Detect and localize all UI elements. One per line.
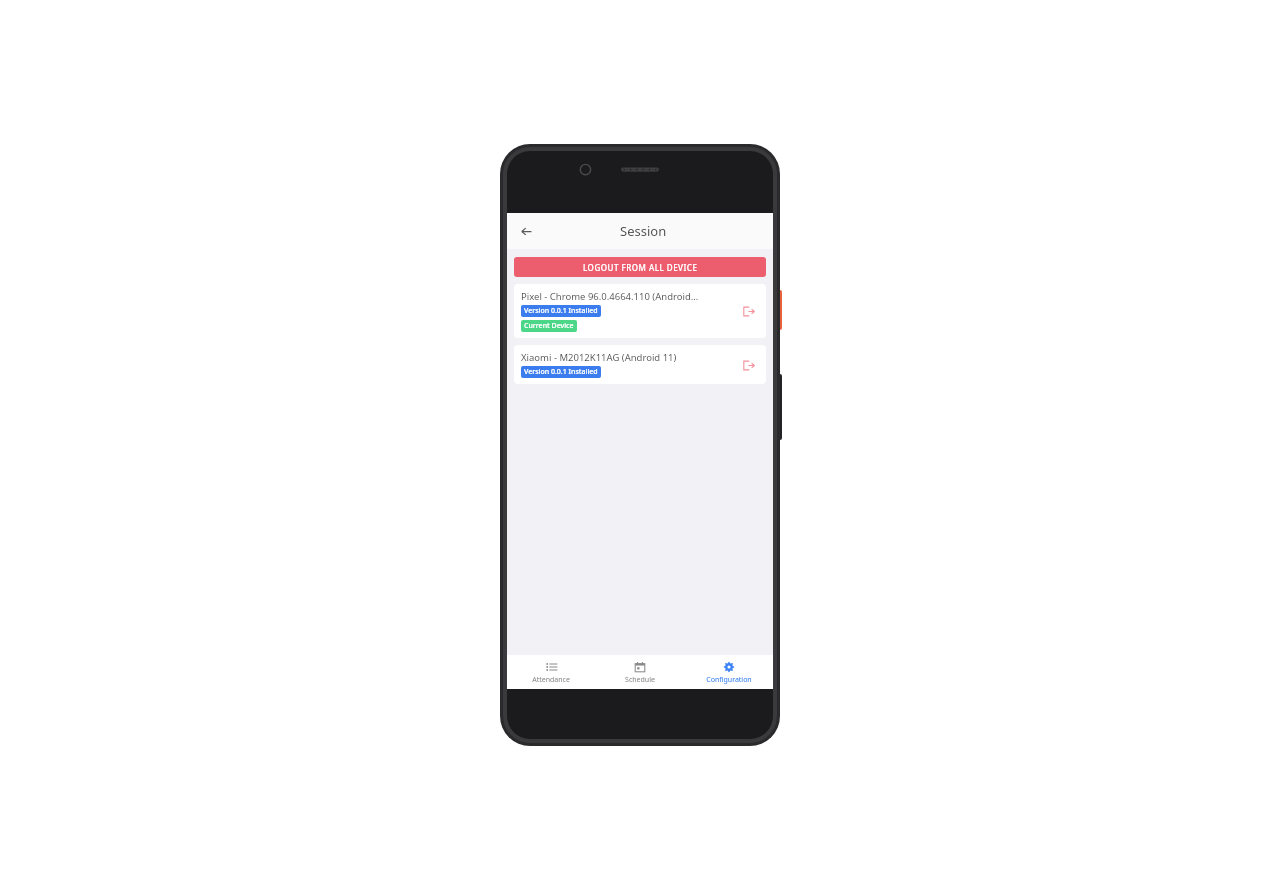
staticText: Xiaomi - M2012K11AG (Android 11): [521, 351, 677, 364]
button[interactable]: Schedule: [595, 655, 684, 689]
staticText: Configuration: [706, 675, 752, 685]
staticText: Version 0.0.1 Installed: [524, 306, 598, 316]
staticText: LOGOUT FROM ALL DEVICE: [583, 262, 698, 273]
staticText: Current Device: [524, 321, 574, 331]
staticText: Schedule: [625, 675, 655, 685]
button[interactable]: Xiaomi - M2012K11AG (Android 11): [514, 345, 766, 384]
staticText: Attendance: [532, 675, 570, 685]
button[interactable]: Logout device: [737, 300, 759, 322]
button[interactable]: LOGOUT FROM ALL DEVICE: [514, 257, 766, 277]
staticText: Pixel - Chrome 96.0.4664.110 (Android…: [521, 290, 699, 303]
button[interactable]: Attendance: [507, 655, 595, 689]
button[interactable]: Pixel - Chrome 96.0.4664.110 (Android…: [514, 284, 766, 338]
staticText: Session: [620, 222, 667, 240]
button[interactable]: Configuration: [684, 655, 773, 689]
button[interactable]: Back: [513, 218, 539, 244]
staticText: Version 0.0.1 Installed: [524, 367, 598, 377]
button[interactable]: Logout device: [737, 354, 759, 376]
